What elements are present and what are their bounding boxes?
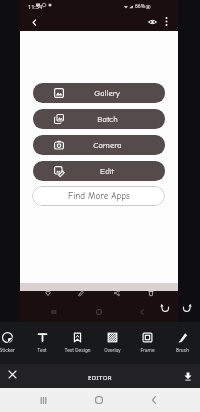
staticText: 11:34	[28, 3, 43, 10]
staticText: Edit	[100, 166, 114, 176]
staticText: Gallery	[94, 88, 120, 98]
button[interactable]: Back	[136, 306, 148, 318]
button[interactable]: Home	[91, 392, 107, 408]
button[interactable]: Edit	[33, 161, 165, 181]
button[interactable]: Save	[179, 367, 196, 384]
button[interactable]: Sticker	[0, 331, 24, 353]
button[interactable]: More options	[158, 13, 175, 30]
button[interactable]: Recents	[48, 306, 60, 318]
staticText: Overlay	[104, 347, 121, 353]
staticText: Sticker	[0, 347, 15, 353]
staticText: Batch	[97, 114, 118, 124]
staticText: Frame	[140, 347, 155, 353]
staticText: Find More Apps	[68, 191, 130, 201]
button[interactable]: Redo	[177, 298, 196, 317]
button[interactable]: Text Design	[60, 331, 94, 353]
button[interactable]: Back	[26, 14, 42, 30]
button[interactable]: Share	[114, 290, 120, 296]
button[interactable]: Find More Apps	[32, 186, 165, 206]
button[interactable]: Recents	[35, 392, 51, 408]
button[interactable]: Home	[93, 306, 105, 318]
button[interactable]: Preview	[144, 13, 161, 30]
staticText: 66%	[135, 3, 145, 10]
button[interactable]: Brush	[165, 331, 199, 353]
button[interactable]: Undo	[155, 298, 174, 317]
staticText: Text Design	[64, 347, 91, 353]
button[interactable]: Frame	[130, 331, 164, 353]
staticText: Text	[37, 347, 47, 353]
staticText: EDITOR	[88, 374, 113, 382]
button[interactable]: Close editor	[4, 366, 20, 382]
button[interactable]: Overlay	[95, 331, 129, 353]
staticText: Camera	[93, 140, 122, 150]
button[interactable]: Back	[146, 392, 162, 408]
button[interactable]: Camera	[33, 135, 165, 155]
button[interactable]: Edit	[78, 290, 84, 296]
button[interactable]: Gallery	[33, 83, 165, 103]
staticText: Brush	[176, 347, 189, 353]
button[interactable]: Favourite	[45, 290, 51, 296]
button[interactable]: Delete	[148, 290, 154, 296]
button[interactable]: Text	[25, 331, 59, 353]
button[interactable]: Batch	[33, 109, 165, 129]
